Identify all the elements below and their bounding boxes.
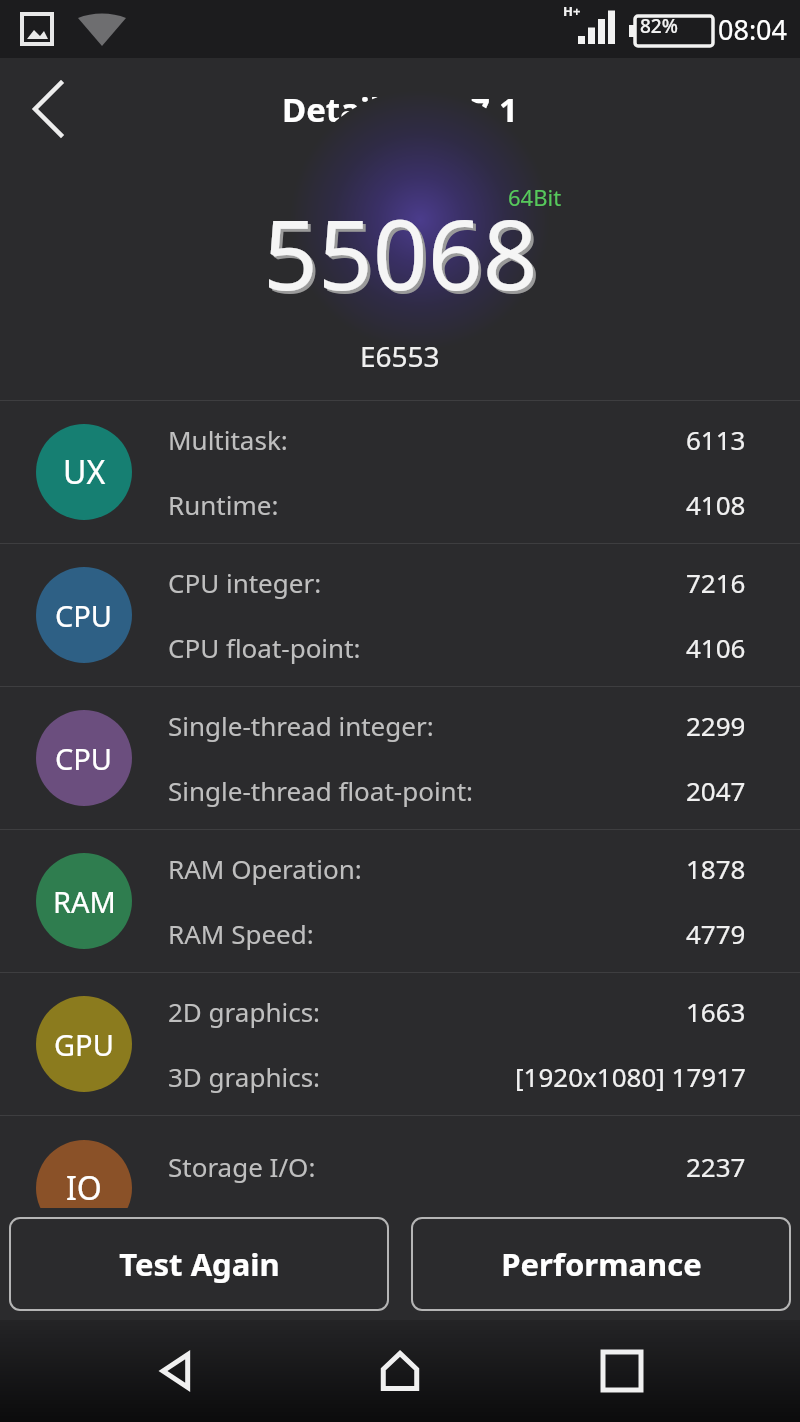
staticText: Single-thread float-point: [168,773,474,808]
button[interactable]: Back [134,1327,222,1415]
staticText: 4106 [686,630,746,665]
staticText: Storage I/O: [168,1149,316,1184]
staticText: 55068 [263,187,538,318]
staticText: RAM Speed: [168,916,314,951]
staticText: Details - v5.7.1 [282,87,518,132]
button[interactable]: Home [356,1327,444,1415]
button[interactable]: RAM [0,830,800,972]
staticText: 3D graphics: [168,1059,321,1094]
button[interactable]: CPU [0,687,800,829]
staticText: 4108 [686,487,746,522]
staticText: 1663 [686,994,746,1029]
staticText: 64Bit [508,182,562,212]
staticText: 82% [640,13,678,39]
staticText: E6553 [360,337,440,375]
staticText: Single-thread integer: [168,708,434,743]
staticText: CPU [55,739,113,778]
staticText: 1878 [686,851,746,886]
staticText: 2299 [686,708,746,743]
staticText: 2047 [686,773,746,808]
staticText: CPU integer: [168,565,322,600]
staticText: 2237 [686,1149,746,1184]
button[interactable]: Recent apps [578,1327,666,1415]
staticText: Multitask: [168,422,288,457]
button[interactable]: Performance [412,1218,790,1310]
staticText: [1920x1080] 17917 [515,1059,746,1094]
button[interactable]: CPU [0,544,800,686]
staticText: 55068 [266,190,541,321]
staticText: 2D graphics: [168,994,321,1029]
staticText: CPU [55,596,113,635]
staticText: 7216 [686,565,746,600]
button[interactable]: Test Again [10,1218,388,1310]
staticText: RAM Operation: [168,851,362,886]
staticText: 4779 [686,916,746,951]
staticText: Test Again [119,1243,280,1285]
staticText: Performance [501,1243,702,1285]
staticText: UX [63,450,106,494]
button[interactable]: GPU [0,973,800,1115]
staticText: CPU float-point: [168,630,361,665]
button[interactable]: UX [0,401,800,543]
staticText: H+ [563,2,581,20]
staticText: 08:04 [718,11,788,48]
staticText: RAM [53,882,116,921]
staticText: 6113 [686,422,746,457]
button[interactable]: Back [0,61,96,157]
staticText: GPU [54,1025,114,1064]
staticText: IO [66,1166,102,1210]
button[interactable]: IO [0,1116,800,1216]
staticText: Runtime: [168,487,279,522]
